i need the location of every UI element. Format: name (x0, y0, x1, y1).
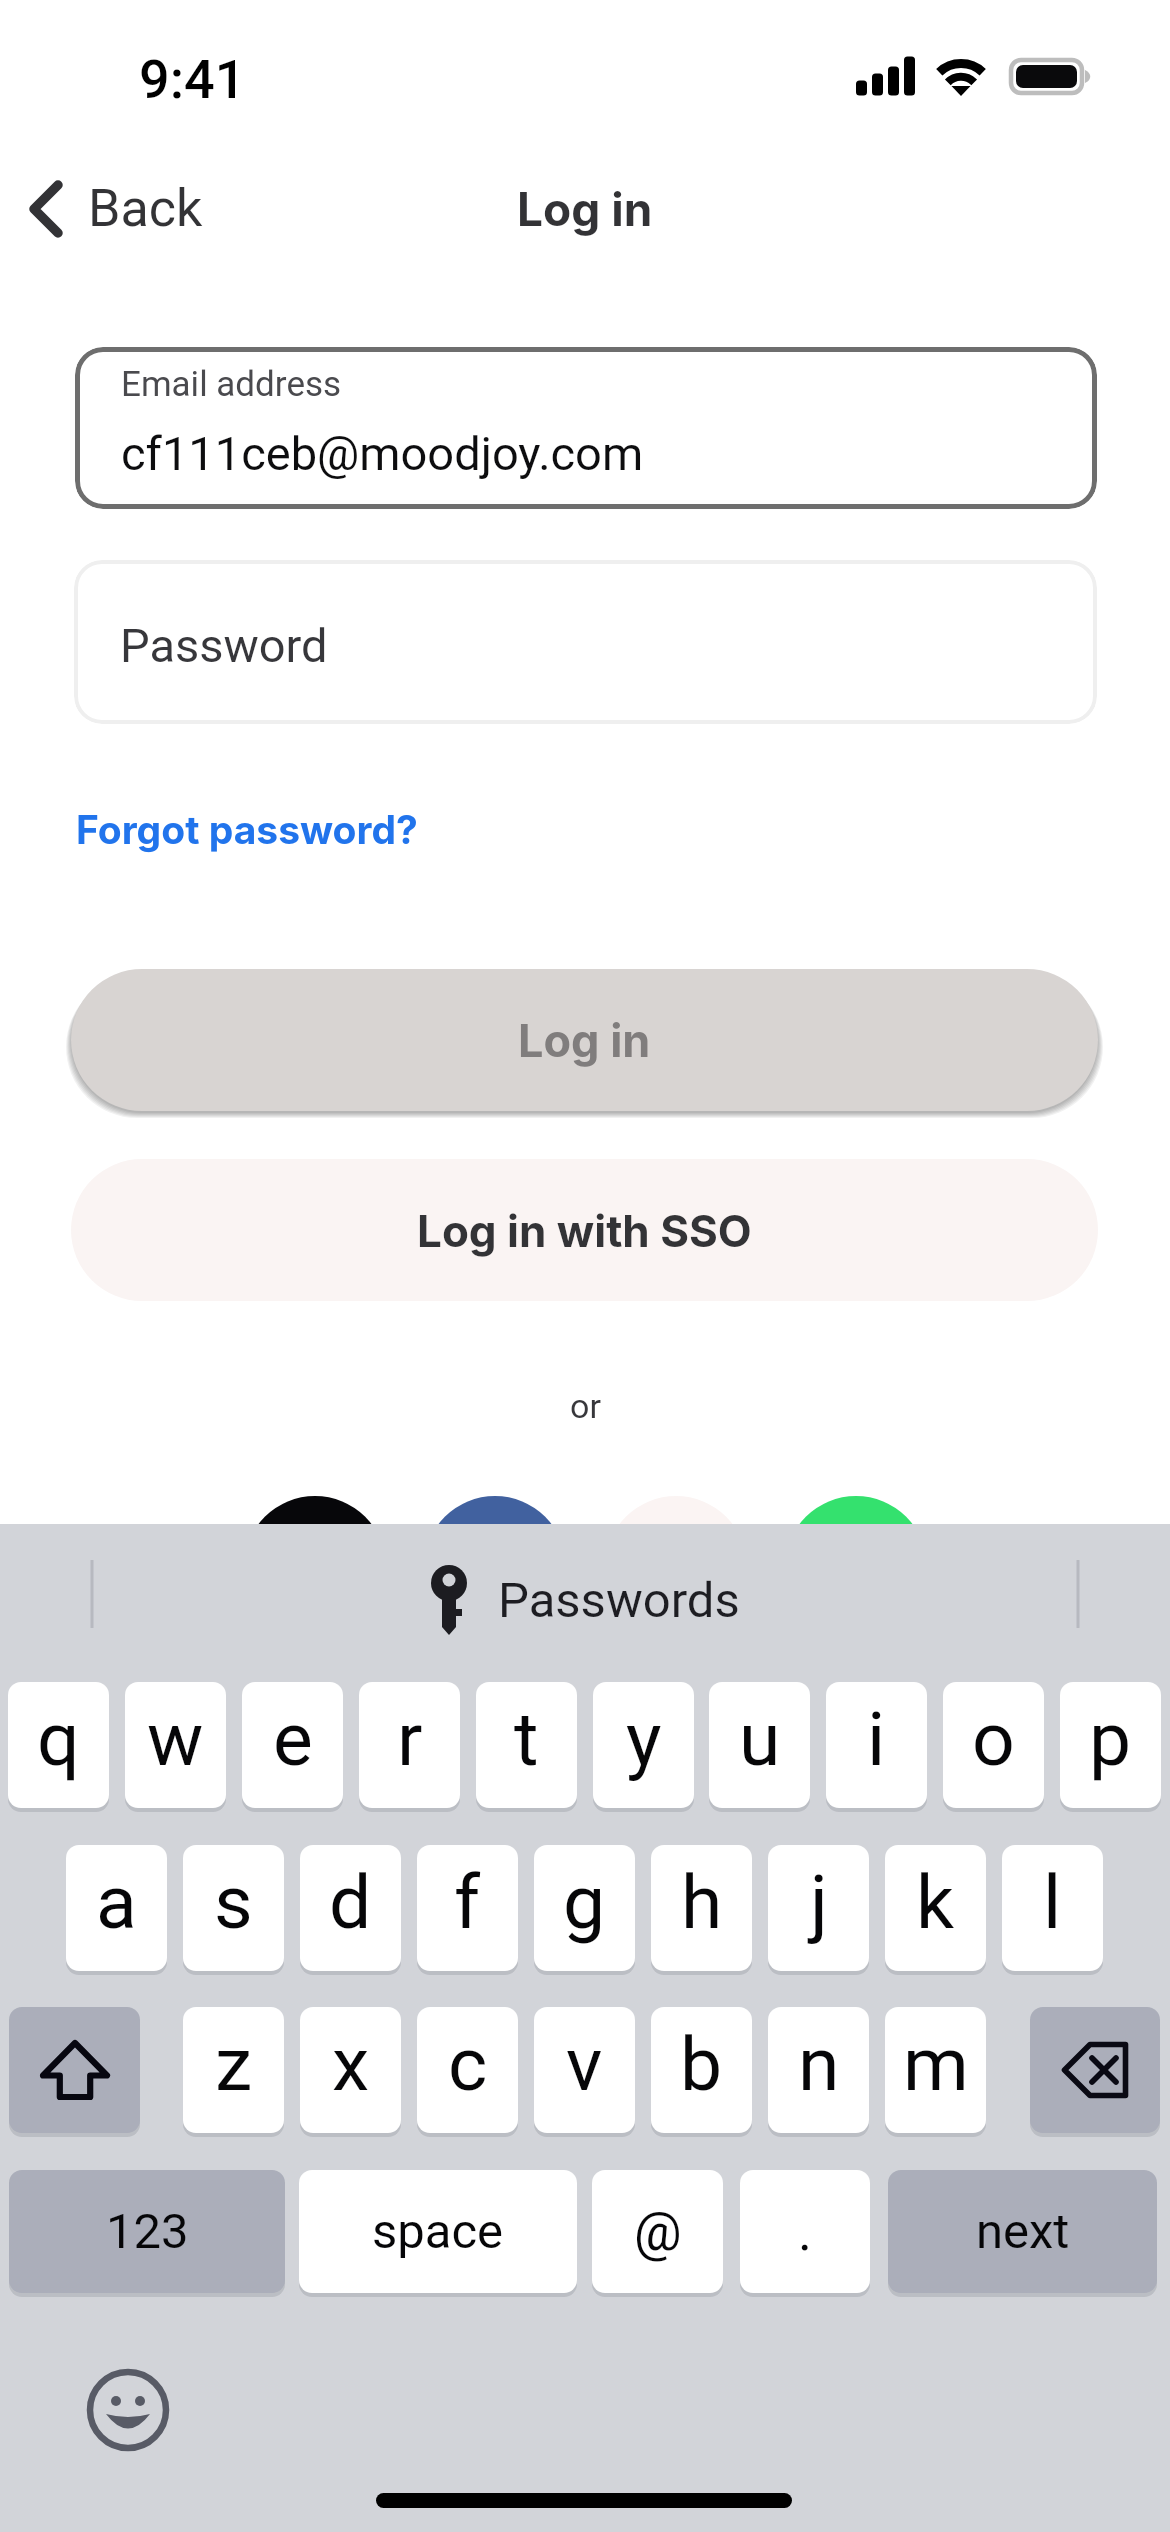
button[interactable]: f (417, 1845, 518, 1971)
button[interactable]: x (300, 2007, 401, 2133)
staticText: q (37, 1695, 80, 1783)
button[interactable]: Sign in with Apple (244, 1496, 386, 1638)
button[interactable]: Log in with SSO (71, 1159, 1098, 1301)
button[interactable]: b (651, 2007, 752, 2133)
staticText: k (916, 1858, 955, 1946)
button[interactable]: h (651, 1845, 752, 1971)
button[interactable]: Shift (9, 2007, 140, 2133)
staticText: g (563, 1858, 606, 1946)
staticText: Back (88, 178, 203, 239)
button[interactable]: t (476, 1682, 577, 1808)
staticText: Log in (518, 1013, 651, 1067)
staticText: s (214, 1858, 253, 1946)
button[interactable]: Emoji keyboard (86, 2368, 170, 2452)
button[interactable]: y (593, 1682, 694, 1808)
button[interactable]: g (534, 1845, 635, 1971)
staticText: f (454, 1858, 481, 1946)
staticText: or (570, 1386, 601, 1426)
button[interactable]: k (885, 1845, 986, 1971)
staticText: j (810, 1858, 828, 1946)
staticText: a (96, 1858, 137, 1946)
staticText: t (514, 1695, 539, 1783)
button[interactable]: v (534, 2007, 635, 2133)
staticText: z (215, 2020, 253, 2108)
button[interactable]: Password (74, 560, 1097, 724)
button[interactable]: m (885, 2007, 986, 2133)
staticText: 123 (106, 2203, 189, 2260)
staticText: p (1089, 1695, 1132, 1783)
button[interactable]: Forgot password? (56, 794, 438, 865)
button[interactable]: u (709, 1682, 810, 1808)
staticText: c (448, 2020, 488, 2108)
staticText: Email address (121, 364, 342, 405)
staticText: w (147, 1695, 204, 1783)
button[interactable]: Passwords (0, 1524, 1170, 1664)
staticText: next (976, 2203, 1070, 2260)
button[interactable]: next (888, 2170, 1157, 2293)
button[interactable]: 123 (9, 2170, 285, 2293)
button[interactable]: i (826, 1682, 927, 1808)
staticText: Password (120, 618, 328, 673)
staticText: Log in (517, 181, 653, 237)
button[interactable]: n (768, 2007, 869, 2133)
staticText: o (972, 1695, 1015, 1783)
staticText: Forgot password? (76, 806, 418, 853)
button[interactable]: Sign in with WhatsApp (785, 1496, 927, 1638)
button[interactable]: e (242, 1682, 343, 1808)
staticText: l (1043, 1858, 1062, 1946)
staticText: m (903, 2020, 969, 2108)
staticText: @ (634, 2201, 682, 2263)
button[interactable]: Backspace (1030, 2007, 1160, 2133)
staticText: d (329, 1858, 372, 1946)
button[interactable]: z (183, 2007, 284, 2133)
button[interactable]: Sign in with Google (605, 1496, 747, 1638)
staticText: x (332, 2020, 370, 2108)
staticText: e (273, 1695, 313, 1783)
staticText: Passwords (498, 1572, 740, 1629)
button[interactable]: space (299, 2170, 577, 2293)
button[interactable]: r (359, 1682, 460, 1808)
button[interactable]: Sign in with Facebook (424, 1496, 566, 1638)
staticText: v (566, 2020, 603, 2108)
button[interactable]: Back (10, 168, 217, 249)
button[interactable]: l (1002, 1845, 1103, 1971)
staticText: n (798, 2020, 840, 2108)
button[interactable]: p (1060, 1682, 1161, 1808)
staticText: r (397, 1695, 423, 1783)
staticText: y (626, 1695, 662, 1783)
button[interactable]: q (8, 1682, 109, 1808)
button[interactable]: @ (592, 2170, 723, 2293)
staticText: b (680, 2020, 723, 2108)
staticText: h (681, 1858, 723, 1946)
button[interactable]: o (943, 1682, 1044, 1808)
button[interactable]: Email address (75, 347, 1097, 509)
staticText: Log in with SSO (417, 1204, 752, 1257)
staticText: cf111ceb@moodjoy.com (121, 426, 644, 481)
button[interactable]: Log in (71, 969, 1098, 1111)
button[interactable]: s (183, 1845, 284, 1971)
staticText: . (798, 2201, 812, 2263)
staticText: space (372, 2203, 504, 2260)
button[interactable]: . (740, 2170, 870, 2293)
button[interactable]: a (66, 1845, 167, 1971)
staticText: u (739, 1695, 781, 1783)
button[interactable]: c (417, 2007, 518, 2133)
button[interactable]: j (768, 1845, 869, 1971)
staticText: i (867, 1695, 886, 1783)
staticText: 9:41 (139, 48, 246, 111)
button[interactable]: d (300, 1845, 401, 1971)
button[interactable]: w (125, 1682, 226, 1808)
